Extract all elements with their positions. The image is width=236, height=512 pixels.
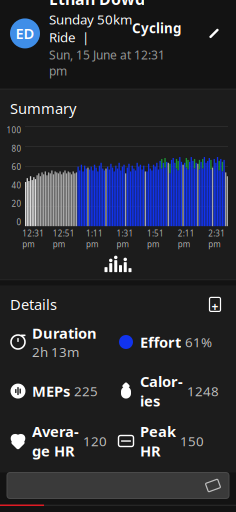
staticText: 225 (74, 382, 98, 400)
staticText: 1248 (187, 382, 219, 400)
staticText: Sunday 50km Ride | (49, 10, 132, 46)
staticText: 40 (11, 180, 21, 191)
button[interactable]: Edit (202, 21, 226, 45)
staticText: 12:31 pm (22, 228, 44, 249)
staticText: 0 (16, 217, 21, 227)
staticText: 2:31 pm (208, 228, 225, 249)
staticText: Sun, 15 June at 12:31 pm (49, 47, 165, 79)
staticText: 80 (11, 143, 21, 154)
staticText: MEPs (32, 381, 70, 401)
staticText: Cycling (132, 19, 181, 37)
staticText: 100 (6, 125, 21, 135)
button[interactable]: Add note (204, 293, 226, 315)
staticText: ED (15, 24, 34, 43)
staticText: Ethan Dowd (49, 0, 145, 9)
staticText: + (211, 298, 218, 314)
staticText: 1:11 pm (86, 228, 103, 249)
staticText: Peak HR (140, 422, 176, 461)
staticText: 2:11 pm (178, 228, 195, 249)
staticText: Summary (10, 99, 76, 118)
staticText: Details (10, 295, 57, 314)
staticText: 1:51 pm (147, 228, 164, 249)
staticText: 1:31 pm (116, 228, 133, 249)
staticText: Effort (140, 332, 181, 352)
staticText: Average HR (32, 422, 79, 461)
staticText: 60 (11, 162, 21, 172)
staticText: 12:51 pm (53, 228, 75, 249)
staticText: Duration (32, 323, 97, 343)
staticText: Calories (140, 372, 183, 411)
staticText: 20 (11, 198, 21, 209)
staticText: 120 (83, 432, 107, 450)
staticText: 61% (185, 333, 212, 351)
staticText: 2h 13m (32, 343, 79, 361)
staticText: 150 (180, 432, 204, 450)
button[interactable] (7, 472, 229, 498)
